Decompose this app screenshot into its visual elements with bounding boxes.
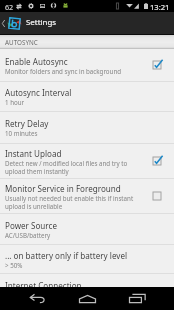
button[interactable]: Autosync Interval <box>0 82 174 111</box>
staticText: Retry Delay <box>5 118 49 129</box>
button[interactable]: Internet Connection <box>0 274 174 305</box>
staticText: Enable Autosync <box>5 56 68 67</box>
staticText: Autosync Interval <box>5 87 72 98</box>
staticText: > 50% <box>5 261 23 269</box>
button[interactable]: Navigate up <box>0 12 22 34</box>
button[interactable]: Recent apps <box>122 287 152 310</box>
staticText: 10 minutes <box>5 129 38 137</box>
staticText: AC/USB/battery <box>5 231 51 239</box>
staticText: Detect new / modified local files and tr… <box>5 159 128 167</box>
button[interactable]: Retry Delay <box>0 112 174 143</box>
button[interactable]: Instant Upload <box>0 144 174 178</box>
staticText: Settings <box>26 17 57 28</box>
staticText: Wi-Fi / mobile <box>5 291 45 299</box>
staticText: Power Source <box>5 220 57 231</box>
staticText: Usually not needed but enable this if in… <box>5 194 134 202</box>
staticText: Instant Upload <box>5 148 62 159</box>
staticText: Monitor Service in Foreground <box>5 183 121 194</box>
staticText: Monitor folders and sync in background <box>5 67 122 75</box>
button[interactable]: Monitor Service in Foreground <box>0 179 174 213</box>
staticText: upload them instantly <box>5 167 69 175</box>
button[interactable]: Home <box>72 287 102 310</box>
staticText: 62 <box>5 2 14 12</box>
staticText: Internet Connection <box>5 280 82 291</box>
staticText: 1 hour <box>5 98 25 106</box>
staticText: AUTOSYNC <box>5 38 38 47</box>
staticText: upload is unreliable <box>5 202 63 210</box>
staticText: 13:21 <box>150 2 170 12</box>
button[interactable]: Power Source <box>0 214 174 244</box>
button[interactable]: Back <box>22 287 52 310</box>
staticText: ... on battery only if battery level <box>5 250 128 261</box>
button[interactable]: Enable Autosync <box>0 49 174 81</box>
button[interactable]: ... on battery only if battery level <box>0 245 174 273</box>
